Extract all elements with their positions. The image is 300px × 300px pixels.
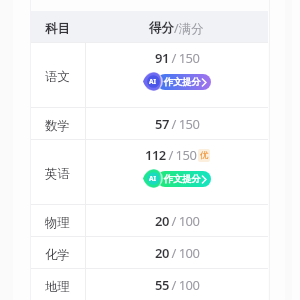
staticText: 优 xyxy=(200,150,209,161)
staticText: 得分 xyxy=(149,20,174,36)
staticText: /满分 xyxy=(174,20,204,37)
button[interactable]: 作文提分 xyxy=(143,169,211,188)
staticText: 化学 xyxy=(45,247,70,263)
staticText: 作文提分 xyxy=(164,76,201,88)
staticText: 20 / 100 xyxy=(155,212,200,230)
staticText: 作文提分 xyxy=(164,173,201,185)
staticText: 英语 xyxy=(45,166,70,182)
staticText: 57 / 150 xyxy=(155,115,200,133)
staticText: 112 / 150 xyxy=(145,146,197,164)
staticText: 物理 xyxy=(45,215,70,231)
staticText: 语文 xyxy=(45,69,70,85)
staticText: 55 / 100 xyxy=(155,276,200,294)
button[interactable]: 作文提分 xyxy=(143,72,211,91)
staticText: 地理 xyxy=(45,279,70,295)
button[interactable]: 地理 xyxy=(31,269,268,300)
button[interactable]: 物理 xyxy=(31,205,268,236)
staticText: AI xyxy=(149,77,157,86)
button[interactable]: 数学 xyxy=(31,108,268,139)
staticText: 91 / 150 xyxy=(155,49,200,67)
staticText: AI xyxy=(149,174,157,183)
staticText: 数学 xyxy=(45,118,70,134)
staticText: 科目 xyxy=(45,21,70,37)
button[interactable]: 化学 xyxy=(31,237,268,268)
button[interactable]: 语文 xyxy=(31,43,268,107)
staticText: 20 / 100 xyxy=(155,244,200,262)
button[interactable]: 英语 xyxy=(31,140,268,204)
